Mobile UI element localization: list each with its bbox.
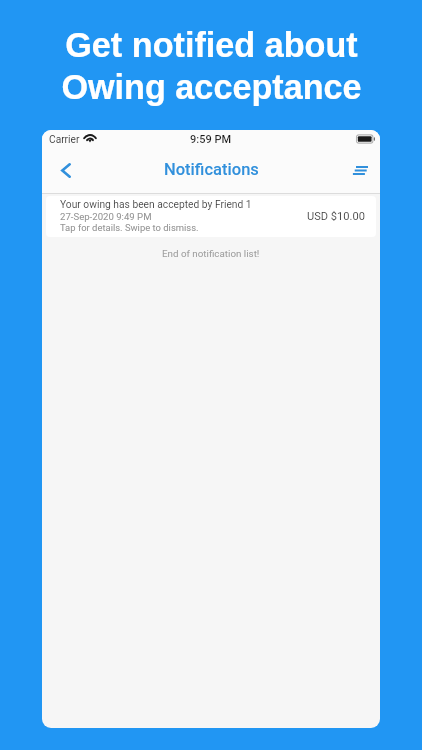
staticText: Tap for details. Swipe to dismiss. — [60, 222, 199, 233]
staticText: 27-Sep-2020 9:49 PM — [60, 211, 152, 222]
staticText: End of notification list! — [162, 248, 260, 259]
staticText: Your owing has been accepted by Friend 1 — [60, 198, 252, 210]
staticText: 9:59 PM — [190, 133, 232, 146]
staticText: USD $10.00 — [307, 210, 365, 223]
button[interactable]: Sort and filter — [336, 151, 380, 194]
button[interactable]: Back — [42, 151, 86, 194]
staticText: Get notified about Owing acceptance — [61, 26, 362, 106]
button[interactable]: Your owing has been accepted by Friend 1 — [46, 196, 376, 237]
staticText: Notifications — [164, 160, 259, 179]
staticText: Carrier — [49, 134, 80, 146]
